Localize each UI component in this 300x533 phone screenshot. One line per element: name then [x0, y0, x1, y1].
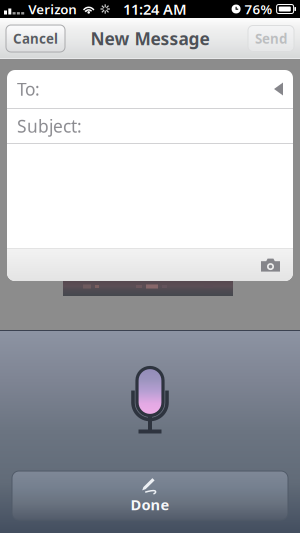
staticText: Done: [130, 495, 169, 514]
button[interactable]: Insert Photo: [256, 252, 285, 278]
staticText: New Message: [90, 27, 209, 50]
button[interactable]: Subject:: [7, 109, 293, 143]
button[interactable]: Cancel: [6, 25, 65, 52]
button[interactable]: To:: [7, 70, 293, 108]
button[interactable]: Send: [248, 25, 294, 51]
staticText: To:: [17, 77, 40, 100]
staticText: Verizon: [28, 0, 77, 18]
staticText: Send: [255, 30, 287, 47]
staticText: 11:24 AM: [123, 0, 187, 19]
staticText: Cancel: [13, 30, 58, 47]
button[interactable]: Done: [12, 471, 288, 520]
staticText: 76%: [245, 0, 273, 18]
staticText: Subject:: [17, 114, 82, 137]
